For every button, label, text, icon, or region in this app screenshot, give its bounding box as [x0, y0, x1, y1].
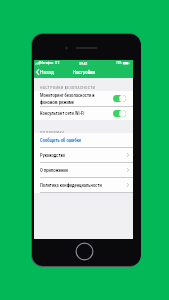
- staticText: Назад: [40, 69, 54, 75]
- staticText: Мегафон: [40, 61, 54, 65]
- button[interactable]: Toggle: [113, 110, 126, 117]
- button[interactable]: Политика конфиденциальности: [34, 178, 133, 192]
- staticText: НАСТРОЙКИ БЕЗОПАСНОСТИ: [40, 85, 96, 90]
- staticText: Мониторинг безопасности в фоновом режиме: [40, 93, 113, 105]
- staticText: Сообщить об ошибке: [40, 138, 82, 143]
- staticText: ПОДДЕРЖКА: [40, 130, 65, 135]
- staticText: 09:41: [79, 61, 88, 65]
- button[interactable]: Консультант сети Wi-Fi: [34, 107, 133, 120]
- staticText: 74%: [116, 61, 122, 65]
- staticText: Настройки: [73, 69, 95, 75]
- staticText: Руководство: [40, 153, 66, 158]
- staticText: Консультант сети Wi-Fi: [40, 111, 113, 116]
- other: Home: [75, 242, 94, 261]
- button[interactable]: Toggle: [113, 95, 126, 102]
- button[interactable]: Мониторинг безопасности в фоновом режиме: [34, 91, 133, 106]
- button[interactable]: Сообщить об ошибке: [34, 133, 133, 147]
- button[interactable]: Назад: [34, 67, 57, 77]
- staticText: LTE: [55, 61, 60, 65]
- button[interactable]: О приложении: [34, 163, 133, 177]
- staticText: О приложении: [40, 168, 68, 173]
- staticText: Политика конфиденциальности: [40, 183, 102, 188]
- button[interactable]: Руководство: [34, 148, 133, 162]
